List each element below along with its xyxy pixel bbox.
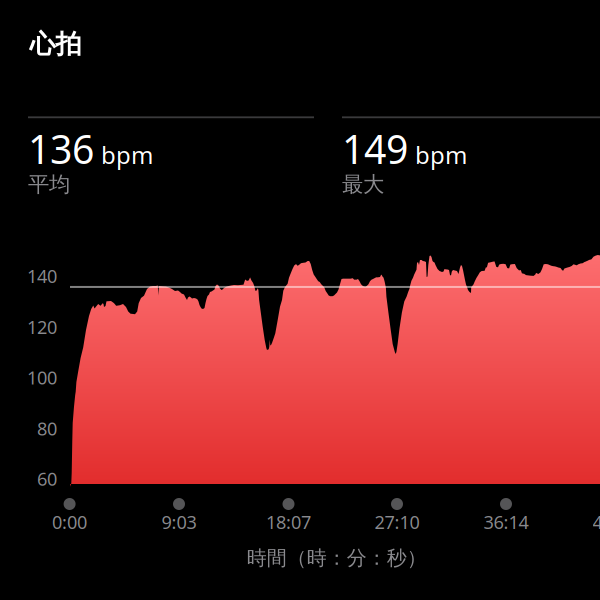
staticText: 149 [342, 122, 408, 175]
staticText: 140 [27, 264, 57, 288]
button[interactable]: 149 [342, 122, 600, 200]
staticText: 60 [37, 466, 57, 491]
staticText: 18:07 [266, 510, 311, 534]
staticText: 0:00 [52, 510, 87, 534]
staticText: 平均 [28, 171, 70, 198]
button[interactable]: 心拍 [29, 27, 89, 61]
staticText: 36:14 [483, 510, 528, 534]
staticText: 時間（時：分：秒） [247, 545, 427, 571]
staticText: 27:10 [374, 510, 419, 534]
staticText: 9:03 [161, 510, 196, 534]
staticText: bpm [415, 138, 467, 171]
staticText: 100 [27, 365, 57, 390]
staticText: 120 [27, 315, 57, 339]
staticText: 最大 [342, 171, 384, 198]
staticText: bpm [101, 138, 153, 171]
staticText: 80 [37, 416, 57, 441]
staticText: 136 [28, 122, 94, 175]
staticText: 45:17 [592, 510, 600, 534]
staticText: 心拍 [29, 28, 81, 60]
button[interactable]: 136 [28, 122, 314, 200]
